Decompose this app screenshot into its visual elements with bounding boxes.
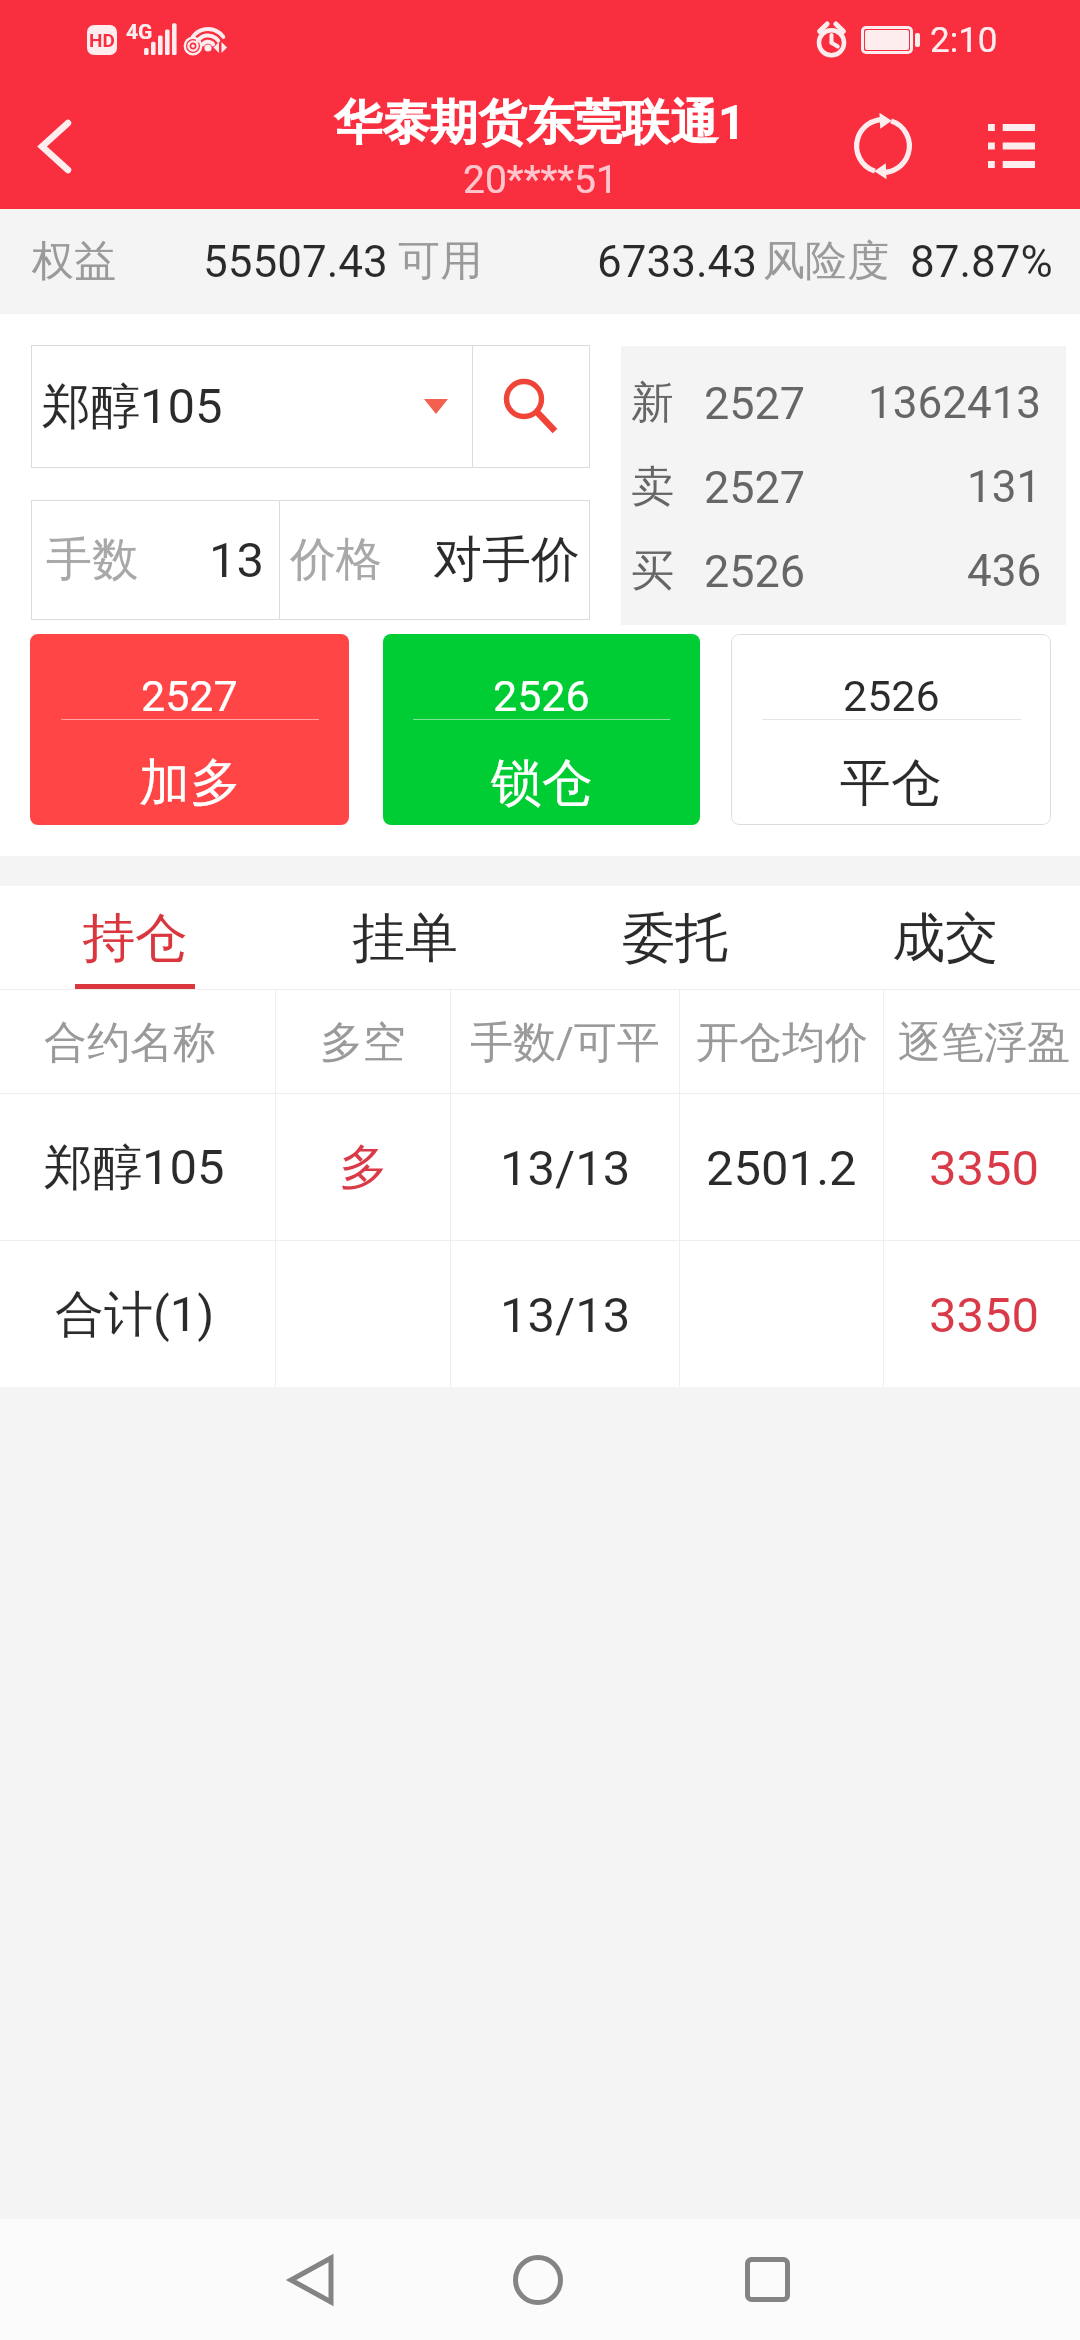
- staticText: 13/13: [500, 1140, 631, 1197]
- staticText: 手数: [46, 531, 138, 589]
- staticText: 2526: [704, 545, 806, 598]
- staticText: 加多: [139, 751, 241, 815]
- staticText: 131: [967, 461, 1042, 513]
- staticText: 可用: [398, 235, 482, 288]
- staticText: 平仓: [840, 751, 942, 815]
- staticText: 2527: [141, 671, 238, 721]
- staticText: 郑醇105: [42, 376, 223, 438]
- staticText: 锁仓: [491, 751, 593, 815]
- button[interactable]: 郑醇105: [31, 345, 472, 468]
- staticText: 6733.43: [597, 236, 757, 288]
- staticText: 13: [209, 532, 265, 589]
- staticText: 2501.2: [706, 1140, 857, 1197]
- staticText: 合计(1): [55, 1284, 215, 1346]
- staticText: 逐笔浮盈: [898, 1016, 1070, 1070]
- staticText: 华泰期货东莞联通1: [334, 93, 746, 153]
- staticText: 1362413: [868, 377, 1042, 429]
- button[interactable]: 2527: [30, 634, 349, 825]
- staticText: 价格: [290, 531, 382, 589]
- staticText: 挂单: [352, 905, 458, 972]
- button[interactable]: Back: [231, 2219, 391, 2340]
- button[interactable]: 成交: [810, 886, 1080, 990]
- button[interactable]: 合计(1): [0, 1241, 1080, 1387]
- staticText: 郑醇105: [44, 1137, 225, 1199]
- staticText: 开仓均价: [696, 1016, 868, 1070]
- staticText: 多: [339, 1137, 388, 1199]
- button[interactable]: 持仓: [0, 886, 270, 990]
- button[interactable]: Back: [0, 96, 110, 196]
- staticText: 手数/可平: [470, 1016, 660, 1070]
- button[interactable]: 委托: [540, 886, 810, 990]
- button[interactable]: Home: [458, 2219, 618, 2340]
- staticText: 87.87%: [910, 236, 1053, 288]
- staticText: 委托: [622, 905, 728, 972]
- button[interactable]: 2526: [731, 634, 1051, 825]
- staticText: 2526: [843, 671, 940, 721]
- staticText: 持仓: [82, 905, 188, 972]
- staticText: HD: [89, 29, 115, 51]
- staticText: 55507.43: [203, 236, 388, 288]
- button[interactable]: 挂单: [270, 886, 540, 990]
- staticText: 买: [631, 544, 674, 598]
- staticText: 3350: [929, 1287, 1040, 1344]
- staticText: 13/13: [500, 1287, 631, 1344]
- staticText: 2527: [704, 461, 806, 514]
- staticText: 2526: [493, 671, 590, 721]
- staticText: 2527: [704, 377, 806, 430]
- staticText: 多空: [320, 1016, 406, 1070]
- staticText: 3350: [929, 1140, 1040, 1197]
- button[interactable]: 手数: [31, 500, 279, 620]
- staticText: 对手价: [433, 529, 580, 591]
- button[interactable]: Refresh: [813, 96, 953, 196]
- staticText: 权益: [32, 235, 116, 288]
- button[interactable]: Recents: [687, 2219, 847, 2340]
- staticText: 新: [631, 376, 674, 430]
- button[interactable]: 价格: [280, 500, 590, 620]
- staticText: 合约名称: [44, 1016, 216, 1070]
- button[interactable]: Menu: [942, 96, 1080, 196]
- staticText: 成交: [892, 905, 998, 972]
- button[interactable]: Search: [473, 345, 590, 468]
- staticText: 436: [967, 545, 1042, 597]
- staticText: 风险度: [763, 235, 889, 288]
- staticText: 卖: [631, 460, 674, 514]
- staticText: 20****51: [463, 157, 618, 203]
- staticText: 2:10: [930, 20, 998, 61]
- staticText: 4G: [126, 20, 153, 45]
- button[interactable]: 郑醇105: [0, 1094, 1080, 1240]
- button[interactable]: 2526: [383, 634, 700, 825]
